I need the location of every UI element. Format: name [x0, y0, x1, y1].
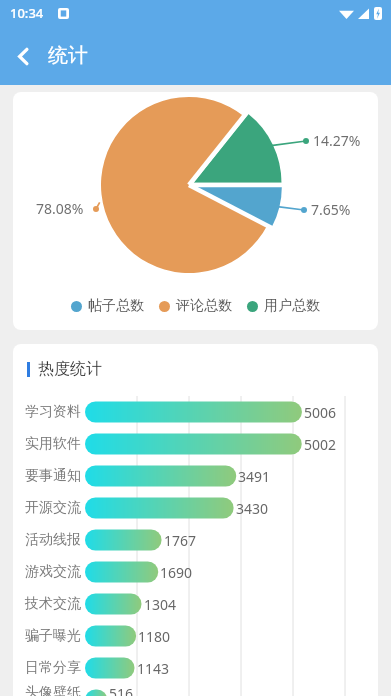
staticText: 头像壁纸: [25, 684, 81, 696]
staticText: 1143: [137, 659, 170, 678]
staticText: 评论总数: [176, 297, 232, 315]
staticText: 游戏交流: [25, 563, 81, 581]
button[interactable]: 用户总数: [247, 297, 320, 315]
staticText: 14.27%: [313, 131, 361, 150]
button[interactable]: 要事通知: [13, 460, 378, 492]
button[interactable]: 热度统计: [13, 344, 378, 696]
staticText: 1180: [138, 627, 171, 646]
staticText: 开源交流: [25, 499, 81, 517]
staticText: 要事通知: [25, 467, 81, 485]
button[interactable]: 日常分享: [13, 652, 378, 684]
button[interactable]: 帖子总数: [71, 297, 144, 315]
staticText: 5002: [304, 435, 337, 454]
staticText: 日常分享: [25, 659, 81, 677]
staticText: 1690: [160, 563, 193, 582]
staticText: 学习资料: [25, 403, 81, 421]
staticText: 3430: [236, 499, 269, 518]
staticText: 1767: [164, 531, 197, 550]
staticText: 3491: [238, 467, 271, 486]
staticText: 5006: [304, 403, 337, 422]
button[interactable]: 头像壁纸: [13, 684, 378, 696]
button[interactable]: Back: [0, 33, 46, 79]
staticText: 统计: [48, 43, 88, 68]
staticText: 技术交流: [25, 595, 81, 613]
staticText: 实用软件: [25, 435, 81, 453]
staticText: 78.08%: [36, 199, 84, 218]
staticText: 1304: [144, 595, 177, 614]
staticText: 热度统计: [38, 359, 102, 379]
staticText: 7.65%: [311, 200, 351, 219]
staticText: 帖子总数: [88, 297, 144, 315]
button[interactable]: 评论总数: [159, 297, 232, 315]
staticText: 10:34: [10, 4, 44, 22]
button[interactable]: 游戏交流: [13, 556, 378, 588]
button[interactable]: 骗子曝光: [13, 620, 378, 652]
button[interactable]: 14.27%: [13, 92, 378, 330]
staticText: 用户总数: [264, 297, 320, 315]
button[interactable]: 实用软件: [13, 428, 378, 460]
button[interactable]: 技术交流: [13, 588, 378, 620]
button[interactable]: 活动线报: [13, 524, 378, 556]
staticText: 骗子曝光: [25, 627, 81, 645]
button[interactable]: 学习资料: [13, 396, 378, 428]
staticText: 活动线报: [25, 531, 81, 549]
staticText: 516: [109, 684, 134, 696]
button[interactable]: 开源交流: [13, 492, 378, 524]
